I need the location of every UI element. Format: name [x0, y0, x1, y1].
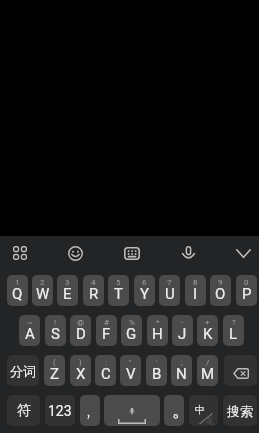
staticText: ;	[181, 358, 183, 367]
staticText: 1	[15, 278, 20, 287]
staticText: D	[76, 325, 86, 343]
staticText: (	[53, 358, 56, 367]
staticText: G	[126, 325, 137, 343]
button[interactable]: M	[197, 355, 218, 386]
staticText: A	[25, 325, 35, 343]
button[interactable]: U	[159, 275, 180, 306]
staticText: )	[79, 358, 82, 367]
button[interactable]: K	[197, 315, 218, 346]
button[interactable]: Keyboard layout	[115, 236, 149, 270]
staticText: L	[229, 325, 238, 343]
staticText: H	[152, 325, 163, 343]
staticText: /	[206, 358, 210, 367]
staticText: 英	[206, 416, 214, 426]
button[interactable]: Q	[7, 275, 28, 306]
staticText: 123	[48, 403, 72, 419]
button[interactable]: A	[19, 315, 40, 346]
staticText: M	[201, 365, 215, 383]
staticText: 搜索	[227, 403, 253, 419]
staticText: J	[178, 325, 187, 343]
button[interactable]: B	[146, 355, 167, 386]
staticText: 2	[40, 278, 45, 287]
staticText: !	[54, 318, 57, 327]
button[interactable]: F	[96, 315, 117, 346]
button[interactable]: Comma	[80, 395, 100, 426]
staticText: P	[242, 285, 252, 303]
staticText: "	[129, 358, 132, 367]
staticText: C	[101, 365, 111, 383]
button[interactable]: T	[108, 275, 129, 306]
staticText: E	[63, 285, 72, 303]
staticText: B	[152, 365, 162, 383]
staticText: 中	[195, 403, 205, 416]
button[interactable]: S	[45, 315, 66, 346]
staticText: 符	[17, 402, 31, 420]
staticText: Y	[140, 285, 150, 303]
button[interactable]: 分词	[7, 355, 39, 386]
staticText: T	[114, 285, 123, 303]
button[interactable]: 符	[7, 395, 40, 426]
staticText: 4	[91, 278, 96, 287]
staticText: R	[89, 285, 99, 303]
button[interactable]: P	[236, 275, 257, 306]
staticText: O	[215, 285, 226, 303]
button[interactable]: Chinese English toggle	[189, 395, 218, 426]
button[interactable]: Backspace	[224, 355, 257, 386]
staticText: 8	[193, 278, 198, 287]
button[interactable]: E	[57, 275, 78, 306]
staticText: 3	[65, 278, 70, 287]
staticText: W	[36, 285, 50, 303]
staticText: -	[181, 318, 184, 327]
button[interactable]: 123	[45, 395, 75, 426]
staticText: F	[102, 325, 111, 343]
staticText: S	[51, 325, 60, 343]
staticText: U	[165, 285, 175, 303]
button[interactable]: C	[95, 355, 116, 386]
button[interactable]: N	[171, 355, 192, 386]
staticText: '	[156, 358, 158, 367]
button[interactable]: H	[147, 315, 168, 346]
staticText: ~	[27, 318, 33, 327]
staticText: X	[76, 365, 86, 383]
staticText: ?	[232, 318, 236, 327]
staticText: @	[77, 318, 85, 327]
button[interactable]: X	[70, 355, 91, 386]
staticText: 0	[244, 278, 249, 287]
button[interactable]: Apps	[3, 236, 37, 270]
button[interactable]: Voice input	[171, 236, 205, 270]
staticText: *	[156, 318, 160, 327]
button[interactable]: Emoji	[58, 236, 92, 270]
staticText: %	[129, 318, 135, 327]
staticText: +	[205, 318, 210, 327]
button[interactable]: L	[223, 315, 244, 346]
staticText: V	[126, 365, 136, 383]
staticText: 6	[142, 278, 147, 287]
staticText: Z	[50, 365, 59, 383]
button[interactable]: I	[185, 275, 206, 306]
staticText: 7	[167, 278, 172, 287]
staticText: Q	[12, 285, 23, 303]
button[interactable]: Z	[44, 355, 65, 386]
staticText: #	[104, 318, 109, 327]
button[interactable]: Space	[104, 395, 160, 426]
button[interactable]: O	[210, 275, 231, 306]
button[interactable]: D	[70, 315, 91, 346]
staticText: 5	[116, 278, 121, 287]
button[interactable]: Period	[164, 395, 184, 426]
button[interactable]: R	[83, 275, 104, 306]
button[interactable]: V	[120, 355, 141, 386]
staticText: 9	[218, 278, 223, 287]
staticText: N	[176, 365, 187, 383]
staticText: K	[203, 325, 213, 343]
button[interactable]: W	[32, 275, 53, 306]
button[interactable]: J	[172, 315, 193, 346]
button[interactable]: 搜索	[223, 395, 257, 426]
button[interactable]: Hide keyboard	[226, 236, 259, 270]
staticText: I	[193, 285, 198, 303]
staticText: 分词	[10, 363, 36, 379]
button[interactable]: Y	[134, 275, 155, 306]
button[interactable]: G	[121, 315, 142, 346]
staticText: :	[105, 358, 107, 367]
